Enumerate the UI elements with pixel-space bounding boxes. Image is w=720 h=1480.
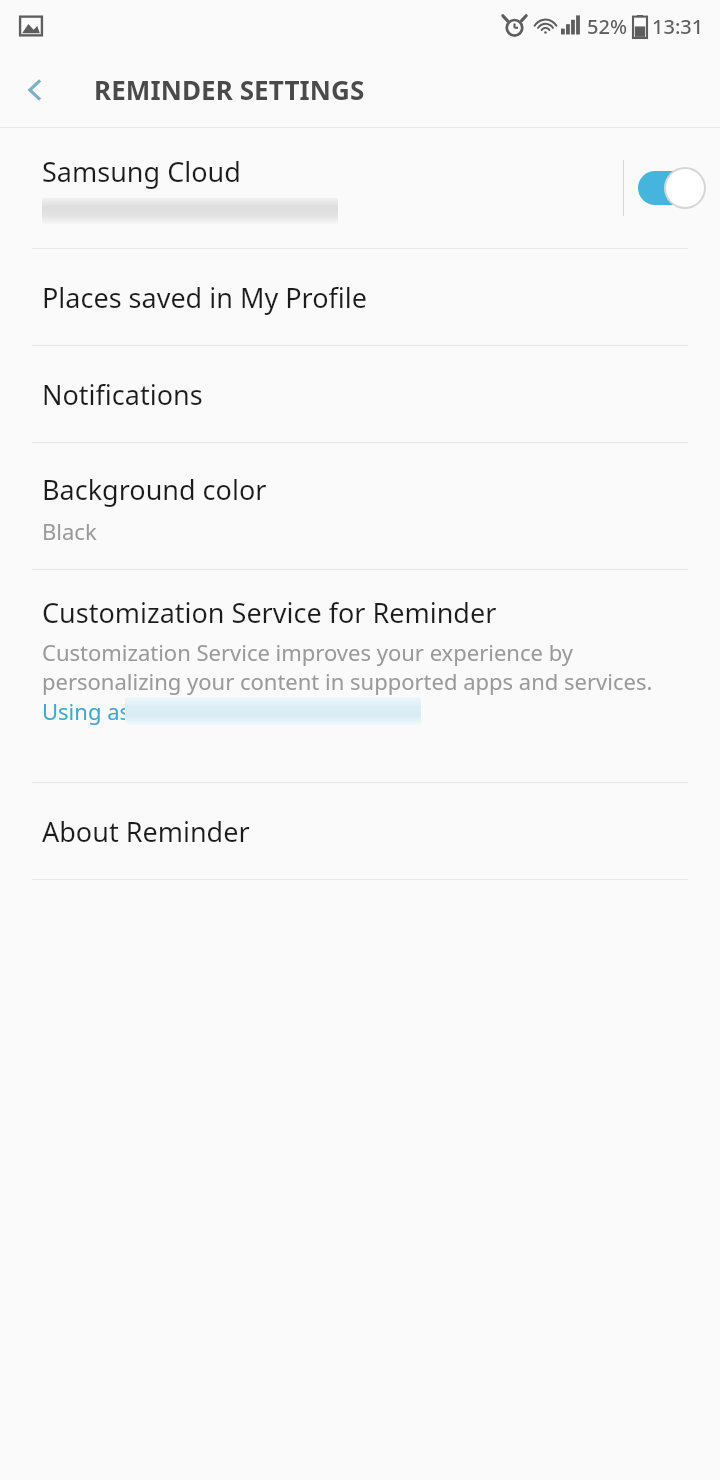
staticText: About Reminder: [42, 813, 250, 850]
staticText: 13:31: [652, 13, 704, 40]
staticText: Black: [42, 516, 97, 546]
staticText: Background color: [42, 471, 267, 508]
button[interactable]: Navigate up: [0, 54, 72, 126]
button[interactable]: Background color: [0, 443, 720, 569]
button[interactable]: About Reminder: [0, 783, 720, 879]
staticText: Using as: [42, 696, 131, 726]
staticText: Customization Service for Reminder: [42, 594, 497, 631]
staticText: Samsung Cloud: [42, 153, 241, 190]
button[interactable]: Customization Service for Reminder: [0, 570, 720, 782]
staticText: Customization Service improves your expe…: [42, 637, 690, 696]
button[interactable]: Samsung Cloud sync toggle: [624, 128, 720, 248]
button[interactable]: Notifications: [0, 346, 720, 442]
button[interactable]: Places saved in My Profile: [0, 249, 720, 345]
staticText: Notifications: [42, 376, 203, 413]
staticText: REMINDER SETTINGS: [94, 72, 365, 107]
button[interactable]: Samsung Cloud: [0, 128, 720, 248]
staticText: Places saved in My Profile: [42, 279, 367, 316]
staticText: 52%: [587, 13, 627, 40]
